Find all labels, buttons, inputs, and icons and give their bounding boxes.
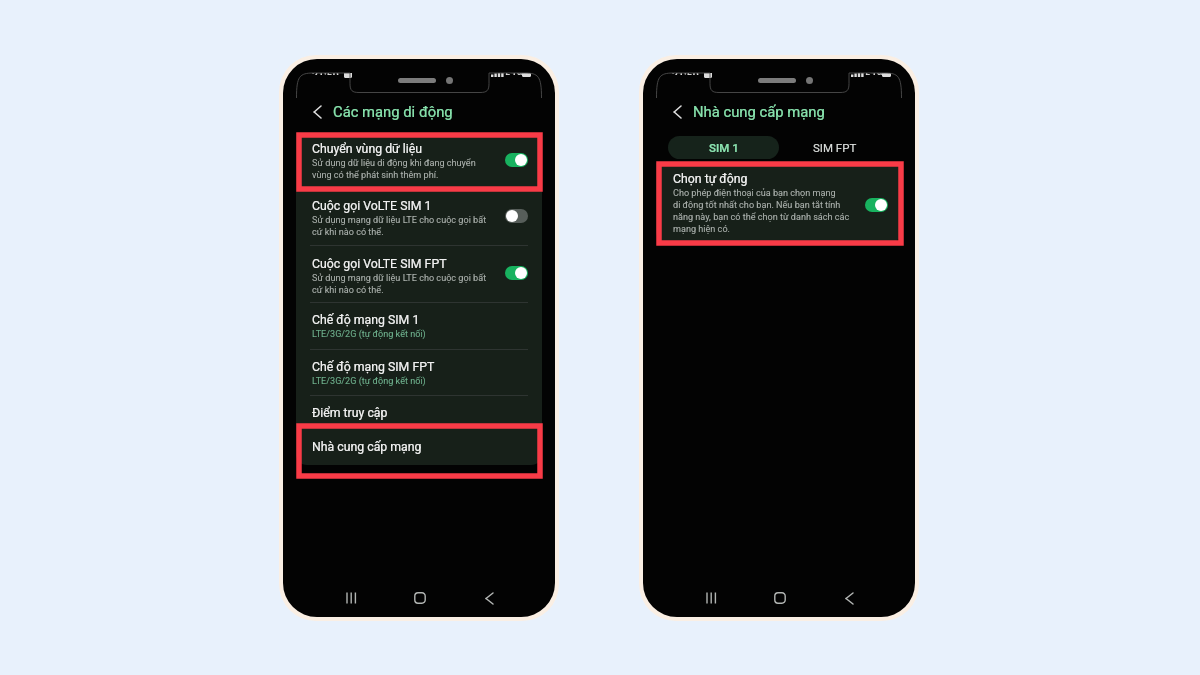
button[interactable]: Cuộc gọi VoLTE SIM FPT: [296, 246, 542, 302]
button[interactable]: Nhà cung cấp mạng: [296, 429, 542, 465]
staticText: Nhà cung cấp mạng: [693, 103, 825, 120]
button[interactable]: Back: [304, 99, 330, 125]
staticText: Các mạng di động: [333, 103, 453, 120]
button[interactable]: Turn off: [865, 198, 888, 212]
staticText: Sử dụng mạng dữ liệu LTE cho cuộc gọi bấ…: [312, 273, 487, 295]
staticText: Chế độ mạng SIM FPT: [312, 360, 435, 374]
staticText: Chọn tự động: [673, 172, 748, 186]
staticText: Cuộc gọi VoLTE SIM FPT: [312, 257, 447, 271]
button[interactable]: SIM FPT: [779, 136, 890, 159]
staticText: SIM FPT: [813, 141, 857, 154]
button[interactable]: Turn off: [505, 153, 528, 167]
staticText: Sử dụng dữ liệu di động khi đang chuyển …: [312, 158, 476, 180]
staticText: LTE/3G/2G (tự động kết nối): [312, 329, 426, 340]
button[interactable]: Chế độ mạng SIM 1: [296, 303, 542, 349]
staticText: SIM 1: [709, 141, 739, 154]
button[interactable]: Back: [664, 99, 690, 125]
button[interactable]: Turn on: [505, 209, 528, 223]
staticText: LTE/3G/2G (tự động kết nối): [312, 376, 426, 387]
staticText: Nhà cung cấp mạng: [312, 440, 422, 454]
button[interactable]: Back: [466, 583, 512, 613]
button[interactable]: Home: [397, 583, 443, 613]
button[interactable]: Turn off: [505, 266, 528, 280]
staticText: Chế độ mạng SIM 1: [312, 313, 420, 327]
staticText: Chuyển vùng dữ liệu: [312, 142, 423, 156]
staticText: 21:50: [312, 73, 339, 75]
staticText: Cho phép điện thoại của bạn chọn mạng di…: [673, 188, 850, 234]
button[interactable]: Recents: [688, 583, 734, 613]
button[interactable]: Recents: [328, 583, 374, 613]
staticText: 51%: [865, 73, 885, 75]
button[interactable]: SIM 1: [668, 136, 779, 159]
button[interactable]: Chuyển vùng dữ liệu: [296, 133, 542, 189]
button[interactable]: Điểm truy cập: [296, 396, 542, 429]
button[interactable]: Home: [757, 583, 803, 613]
staticText: Sử dụng mạng dữ liệu LTE cho cuộc gọi bấ…: [312, 215, 487, 237]
staticText: 21:50: [672, 73, 699, 75]
button[interactable]: Back: [826, 583, 872, 613]
button[interactable]: Cuộc gọi VoLTE SIM 1: [296, 189, 542, 245]
button[interactable]: Chế độ mạng SIM FPT: [296, 350, 542, 395]
staticText: Điểm truy cập: [312, 406, 388, 420]
staticText: 51%: [505, 73, 525, 75]
staticText: Cuộc gọi VoLTE SIM 1: [312, 199, 432, 213]
